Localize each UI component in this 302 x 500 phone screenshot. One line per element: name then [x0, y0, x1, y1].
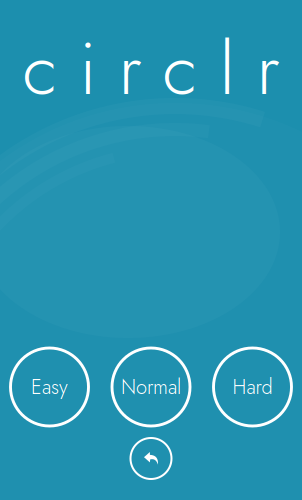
button[interactable]: Easy: [10, 348, 88, 426]
staticText: Normal: [121, 372, 181, 401]
button[interactable]: Back: [130, 438, 171, 479]
button[interactable]: Normal: [112, 348, 190, 426]
staticText: Hard: [232, 372, 272, 401]
staticText: circlr: [22, 17, 279, 121]
staticText: Easy: [31, 372, 68, 401]
button[interactable]: Hard: [213, 348, 291, 426]
